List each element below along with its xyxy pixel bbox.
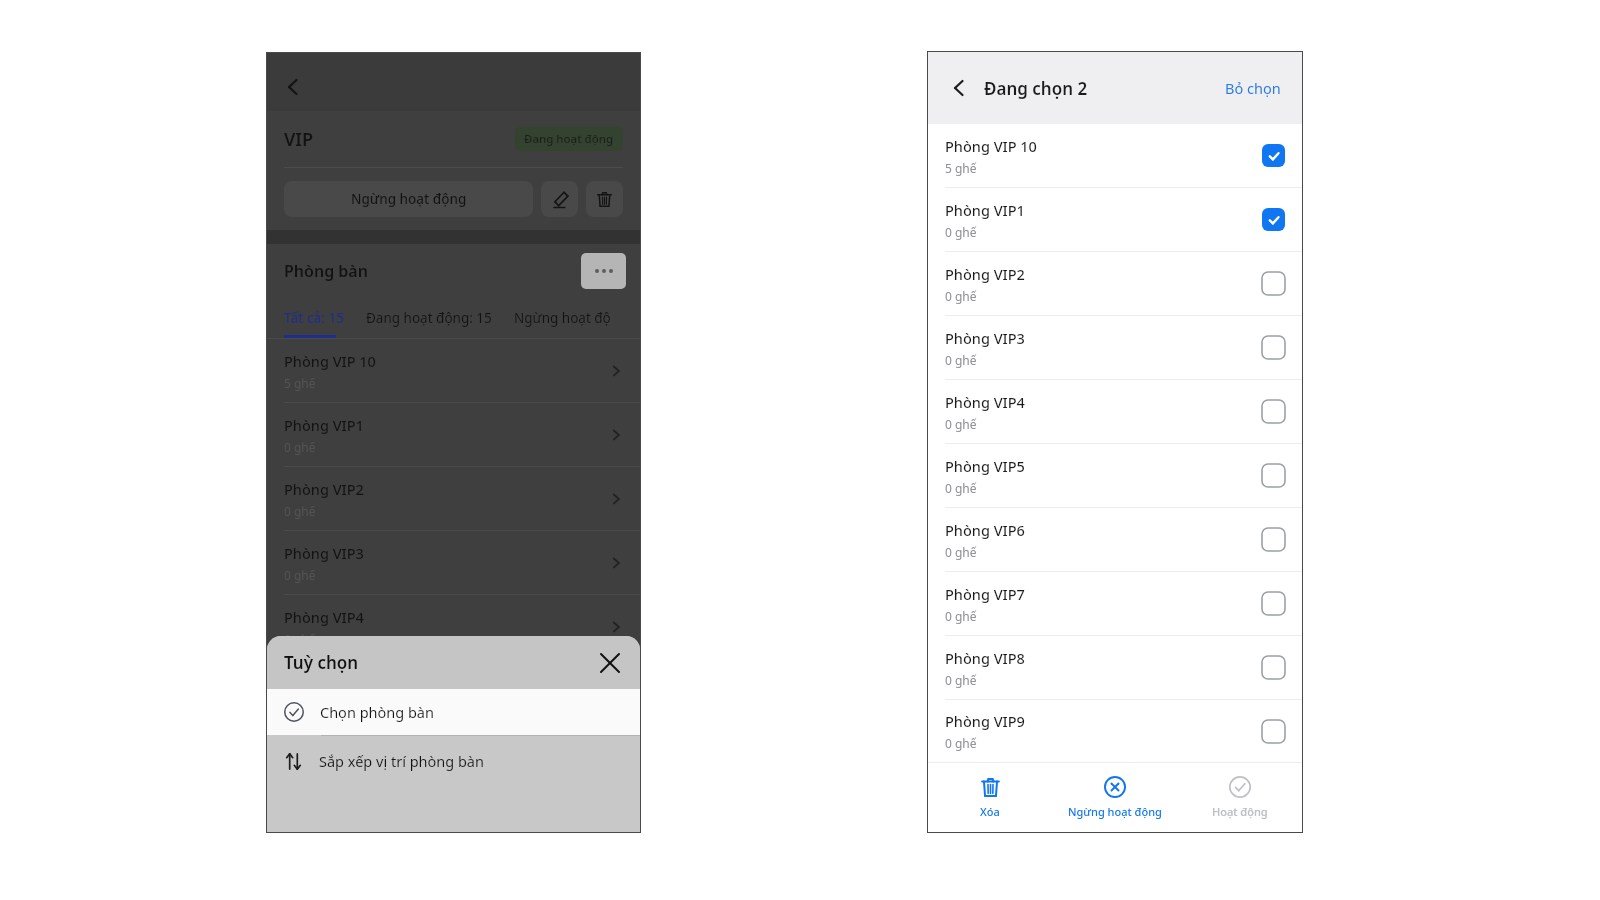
- staticText: Đang hoạt động: 15: [366, 309, 492, 327]
- staticText: Phòng VIP7: [945, 584, 1025, 604]
- staticText: Tuỳ chọn: [284, 651, 359, 674]
- staticText: Chọn phòng bàn: [320, 702, 434, 722]
- button[interactable]: Phòng VIP1: [284, 403, 624, 466]
- staticText: Phòng VIP1: [945, 200, 1025, 220]
- staticText: 0 ghế: [284, 439, 316, 455]
- staticText: Phòng VIP3: [284, 543, 364, 563]
- staticText: Phòng VIP3: [945, 328, 1025, 348]
- button[interactable]: Phòng VIP3: [945, 316, 1285, 379]
- staticText: Phòng VIP1: [284, 415, 364, 435]
- button[interactable]: Tất cả: 15: [284, 298, 344, 338]
- staticText: 0 ghế: [945, 608, 977, 624]
- button[interactable]: Phòng VIP2: [945, 252, 1285, 315]
- button[interactable]: Phòng VIP 10: [284, 339, 624, 402]
- button[interactable]: Ngừng hoạt động: [284, 181, 533, 217]
- staticText: Bỏ chọn: [1225, 78, 1281, 98]
- button[interactable]: Phòng VIP5: [945, 444, 1285, 507]
- button[interactable]: Phòng VIP8: [945, 636, 1285, 699]
- button[interactable]: Phòng VIP4: [945, 380, 1285, 443]
- staticText: Phòng VIP2: [284, 479, 364, 499]
- button[interactable]: Phòng VIP7: [945, 572, 1285, 635]
- button[interactable]: Phòng VIP 10: [945, 124, 1285, 187]
- button[interactable]: Xóa: [928, 763, 1052, 832]
- staticText: 0 ghế: [284, 503, 316, 519]
- staticText: 0 ghế: [284, 567, 316, 583]
- button[interactable]: Ngừng hoạt động: [1052, 763, 1177, 832]
- staticText: 0 ghế: [945, 224, 977, 240]
- staticText: Phòng VIP5: [284, 671, 364, 691]
- staticText: Hoạt động: [1212, 804, 1268, 819]
- staticText: Ngừng hoạt động: [351, 190, 467, 208]
- button[interactable]: Ngừng hoạt độ: [514, 298, 611, 338]
- staticText: 5 ghế: [284, 375, 316, 391]
- button[interactable]: Phòng VIP5: [284, 659, 624, 722]
- button[interactable]: Bỏ chọn: [1221, 74, 1285, 102]
- staticText: 5 ghế: [945, 160, 977, 176]
- staticText: Đang chọn 2: [984, 77, 1088, 100]
- button[interactable]: Sắp xếp vị trí phòng bàn: [284, 736, 623, 786]
- staticText: Phòng VIP8: [945, 648, 1025, 668]
- staticText: 0 ghế: [284, 631, 316, 647]
- staticText: Phòng VIP2: [945, 264, 1025, 284]
- staticText: VIP: [284, 127, 314, 152]
- staticText: Phòng VIP 10: [284, 351, 376, 371]
- button[interactable]: Phòng VIP2: [284, 467, 624, 530]
- staticText: 0 ghế: [945, 352, 977, 368]
- staticText: Phòng VIP 10: [945, 136, 1037, 156]
- button[interactable]: Close: [592, 645, 628, 681]
- button[interactable]: Back: [271, 65, 315, 109]
- button[interactable]: Phòng VIP1: [945, 188, 1285, 251]
- button[interactable]: Phòng VIP3: [284, 531, 624, 594]
- staticText: Phòng VIP5: [945, 456, 1025, 476]
- staticText: Phòng bàn: [284, 260, 368, 282]
- button[interactable]: Back: [940, 69, 978, 107]
- button[interactable]: Phòng VIP4: [284, 595, 624, 658]
- staticText: Phòng VIP6: [945, 520, 1025, 540]
- staticText: 0 ghế: [284, 695, 316, 711]
- staticText: 0 ghế: [945, 480, 977, 496]
- button[interactable]: Hoạt động: [1177, 763, 1302, 832]
- staticText: 0 ghế: [945, 672, 977, 688]
- button[interactable]: Edit: [541, 181, 578, 217]
- staticText: 0 ghế: [945, 416, 977, 432]
- button[interactable]: Chọn phòng bàn: [284, 689, 623, 735]
- staticText: Ngừng hoạt độ: [514, 309, 611, 327]
- staticText: Phòng VIP4: [284, 607, 364, 627]
- staticText: Ngừng hoạt động: [1068, 804, 1162, 819]
- staticText: Sắp xếp vị trí phòng bàn: [319, 751, 484, 771]
- button[interactable]: Phòng VIP6: [945, 508, 1285, 571]
- staticText: Phòng VIP4: [945, 392, 1025, 412]
- staticText: Tất cả: 15: [284, 309, 344, 327]
- button[interactable]: Phòng VIP9: [945, 700, 1285, 762]
- staticText: Xóa: [980, 804, 1000, 819]
- button[interactable]: Đang hoạt động: 15: [366, 298, 492, 338]
- staticText: 0 ghế: [945, 544, 977, 560]
- staticText: 0 ghế: [945, 735, 977, 751]
- staticText: Phòng VIP9: [945, 711, 1025, 731]
- staticText: 0 ghế: [945, 288, 977, 304]
- staticText: Đang hoạt động: [524, 131, 614, 147]
- button[interactable]: More options: [581, 253, 626, 289]
- button[interactable]: Delete: [586, 181, 623, 217]
